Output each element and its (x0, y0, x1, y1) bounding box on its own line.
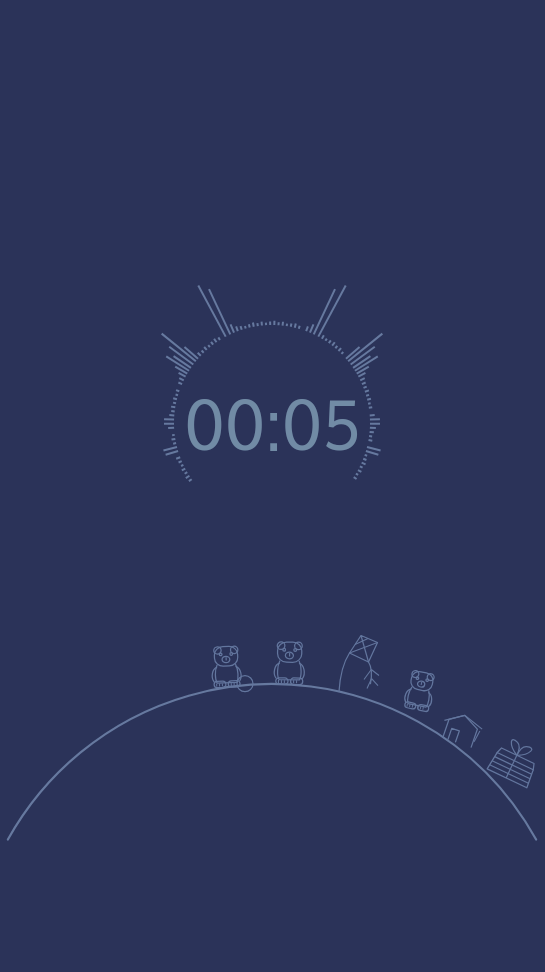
staticText: 00:05 (184, 381, 361, 466)
